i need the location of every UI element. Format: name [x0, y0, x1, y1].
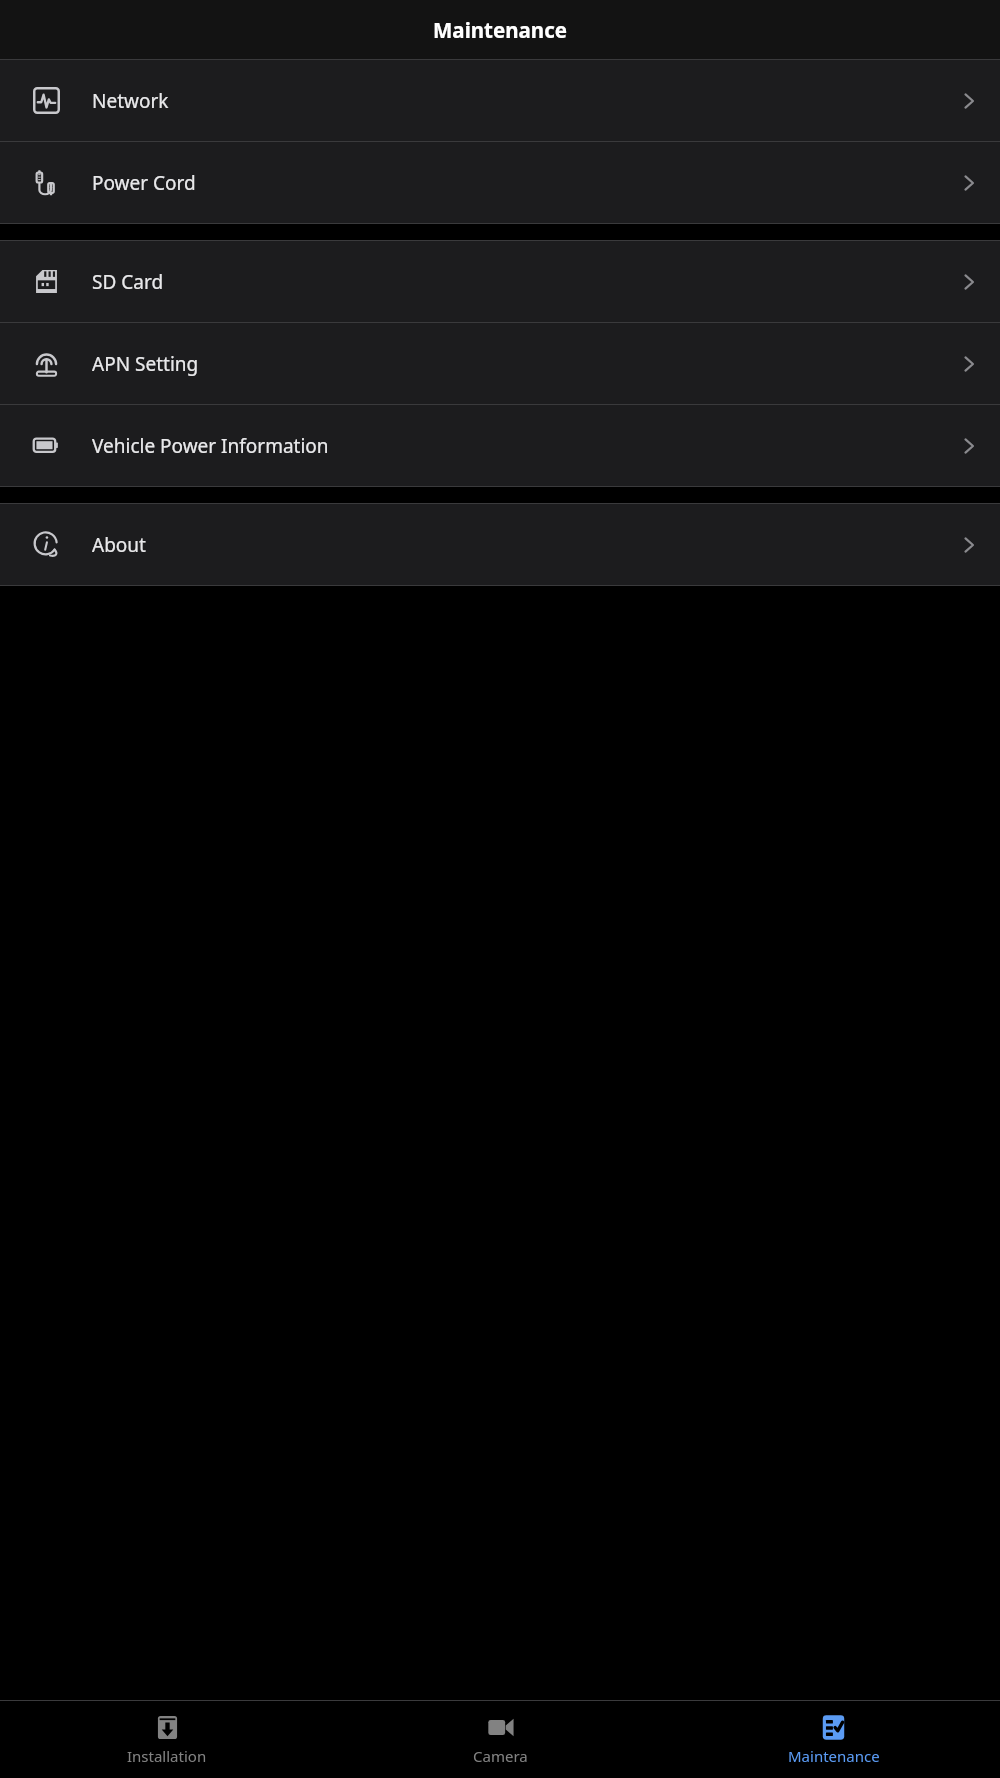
staticText: Vehicle Power Information	[92, 433, 938, 459]
button[interactable]: SD Card	[0, 241, 1000, 322]
staticText: Maintenance	[788, 1746, 880, 1766]
staticText: SD Card	[92, 269, 938, 295]
staticText: About	[92, 532, 938, 558]
button[interactable]: APN Setting	[0, 323, 1000, 404]
button[interactable]: Vehicle Power Information	[0, 405, 1000, 486]
staticText: Network	[92, 88, 938, 114]
button[interactable]: Camera	[334, 1701, 667, 1778]
staticText: APN Setting	[92, 351, 938, 377]
button[interactable]: Installation	[0, 1701, 334, 1778]
button[interactable]: Power Cord	[0, 142, 1000, 223]
staticText: Installation	[127, 1746, 207, 1766]
staticText: Power Cord	[92, 170, 938, 196]
staticText: Camera	[473, 1746, 528, 1766]
button[interactable]: Network	[0, 60, 1000, 141]
staticText: Maintenance	[433, 16, 567, 44]
button[interactable]: About	[0, 504, 1000, 585]
button[interactable]: Maintenance	[667, 1701, 1000, 1778]
